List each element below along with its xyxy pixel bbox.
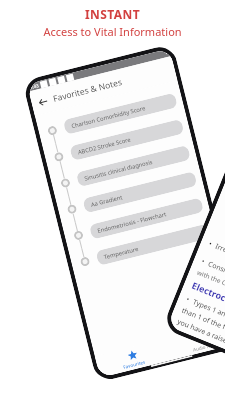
button[interactable]: Endometriosis - Flowchart (62, 190, 211, 252)
staticText: Access to Vital Information (43, 24, 182, 39)
staticText: Types 1 and 2 are more (191, 297, 225, 335)
staticText: 9:43 (29, 82, 39, 90)
staticText: Aa Gradient (90, 193, 124, 209)
staticText: Favorites & Notes (52, 76, 124, 105)
staticText: • (200, 256, 210, 268)
staticText: Temperature (103, 245, 140, 261)
staticText: Sinusitis clinical diagnosis (83, 158, 153, 183)
staticText: than 1 of the following (180, 306, 225, 343)
staticText: INSTANT (85, 6, 140, 22)
button[interactable]: Aa Gradient (56, 164, 205, 226)
button[interactable]: ABCD2 Stroke Score (43, 111, 192, 173)
staticText: Consider anticoagulation (206, 259, 225, 300)
staticText: ABCD2 Stroke Score (77, 135, 132, 156)
button[interactable]: Back (34, 93, 51, 110)
staticText: Electrocardiogram (190, 279, 225, 321)
staticText: Audio Notes (192, 340, 220, 353)
staticText: • (185, 295, 195, 306)
button[interactable]: Charlson Comorbidity Score (36, 85, 185, 147)
button[interactable]: Audio Notes (166, 321, 225, 360)
staticText: Favourites (122, 358, 146, 370)
button[interactable]: Favourites (95, 339, 171, 378)
staticText: Endometriosis - Flowchart (97, 210, 167, 235)
staticText: with the CHA2DS2VASc score (196, 268, 225, 309)
staticText: • (207, 239, 217, 251)
staticText: you have a raised risk (176, 317, 225, 353)
staticText: Irregular rhythm (214, 241, 225, 272)
button[interactable]: Temperature (69, 216, 218, 278)
staticText: Charlson Comorbidity Score (70, 104, 146, 130)
button[interactable]: Sinusitis clinical diagnosis (49, 138, 198, 199)
